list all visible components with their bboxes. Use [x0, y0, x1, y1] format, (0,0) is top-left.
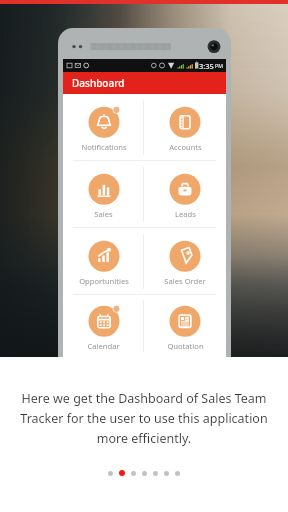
button[interactable]: Accounts: [144, 94, 226, 160]
staticText: Notifications: [81, 142, 127, 152]
staticText: Calendar: [87, 341, 120, 351]
button[interactable]: Sales: [63, 161, 144, 227]
staticText: Leads: [175, 209, 196, 219]
staticText: Here we get the Dashboard of Sales Team …: [16, 390, 272, 447]
button[interactable]: Leads: [144, 161, 226, 227]
staticText: Opportunities: [79, 276, 129, 286]
other: Calendar: [86, 302, 122, 338]
staticText: Quotation: [167, 341, 204, 351]
button[interactable]: Notifications: [63, 94, 144, 160]
button[interactable]: Opportunities: [63, 228, 144, 294]
button[interactable]: Quotation: [144, 295, 226, 357]
button[interactable]: Calendar: [63, 295, 144, 357]
staticText: Sales Order: [164, 276, 206, 286]
staticText: PM: [215, 62, 223, 69]
other: Opportunities: [86, 237, 122, 273]
staticText: Accounts: [169, 142, 202, 152]
other: Sales: [86, 170, 122, 206]
staticText: Dashboard: [72, 76, 125, 90]
staticText: 3:35: [199, 61, 214, 71]
other: Accounts: [167, 103, 203, 139]
other: Quotation: [167, 302, 203, 338]
other: Leads: [167, 170, 203, 206]
button[interactable]: Sales Order: [144, 228, 226, 294]
staticText: Sales: [94, 209, 113, 219]
other: Sales Order: [167, 237, 203, 273]
button[interactable]: Dashboard: [63, 72, 226, 94]
other: Notifications: [86, 103, 122, 139]
